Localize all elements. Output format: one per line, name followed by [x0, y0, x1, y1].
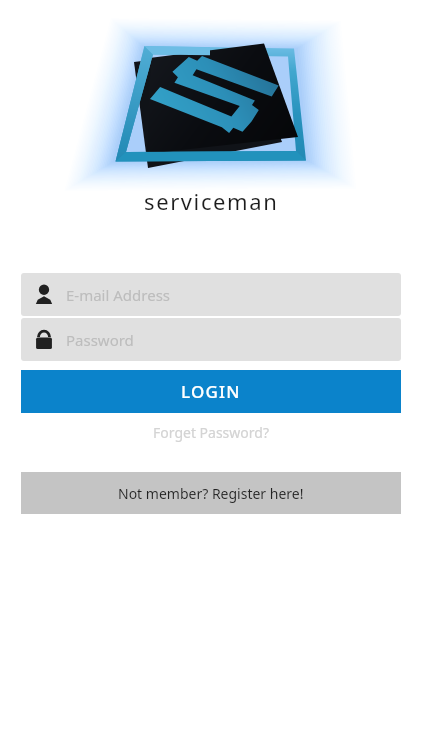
staticText: E-mail Address	[66, 285, 171, 305]
other: Email	[21, 283, 66, 307]
button[interactable]: Forget Password?	[145, 419, 277, 446]
staticText: Password	[66, 330, 134, 350]
button[interactable]: Email	[21, 273, 401, 316]
button[interactable]: LOGIN	[21, 370, 401, 413]
button[interactable]: Not member? Register here!	[21, 472, 401, 514]
staticText: LOGIN	[181, 380, 241, 403]
staticText: Not member? Register here!	[118, 484, 304, 503]
other: Password	[21, 328, 66, 352]
button[interactable]: Password	[21, 318, 401, 361]
staticText: serviceman	[144, 186, 279, 216]
